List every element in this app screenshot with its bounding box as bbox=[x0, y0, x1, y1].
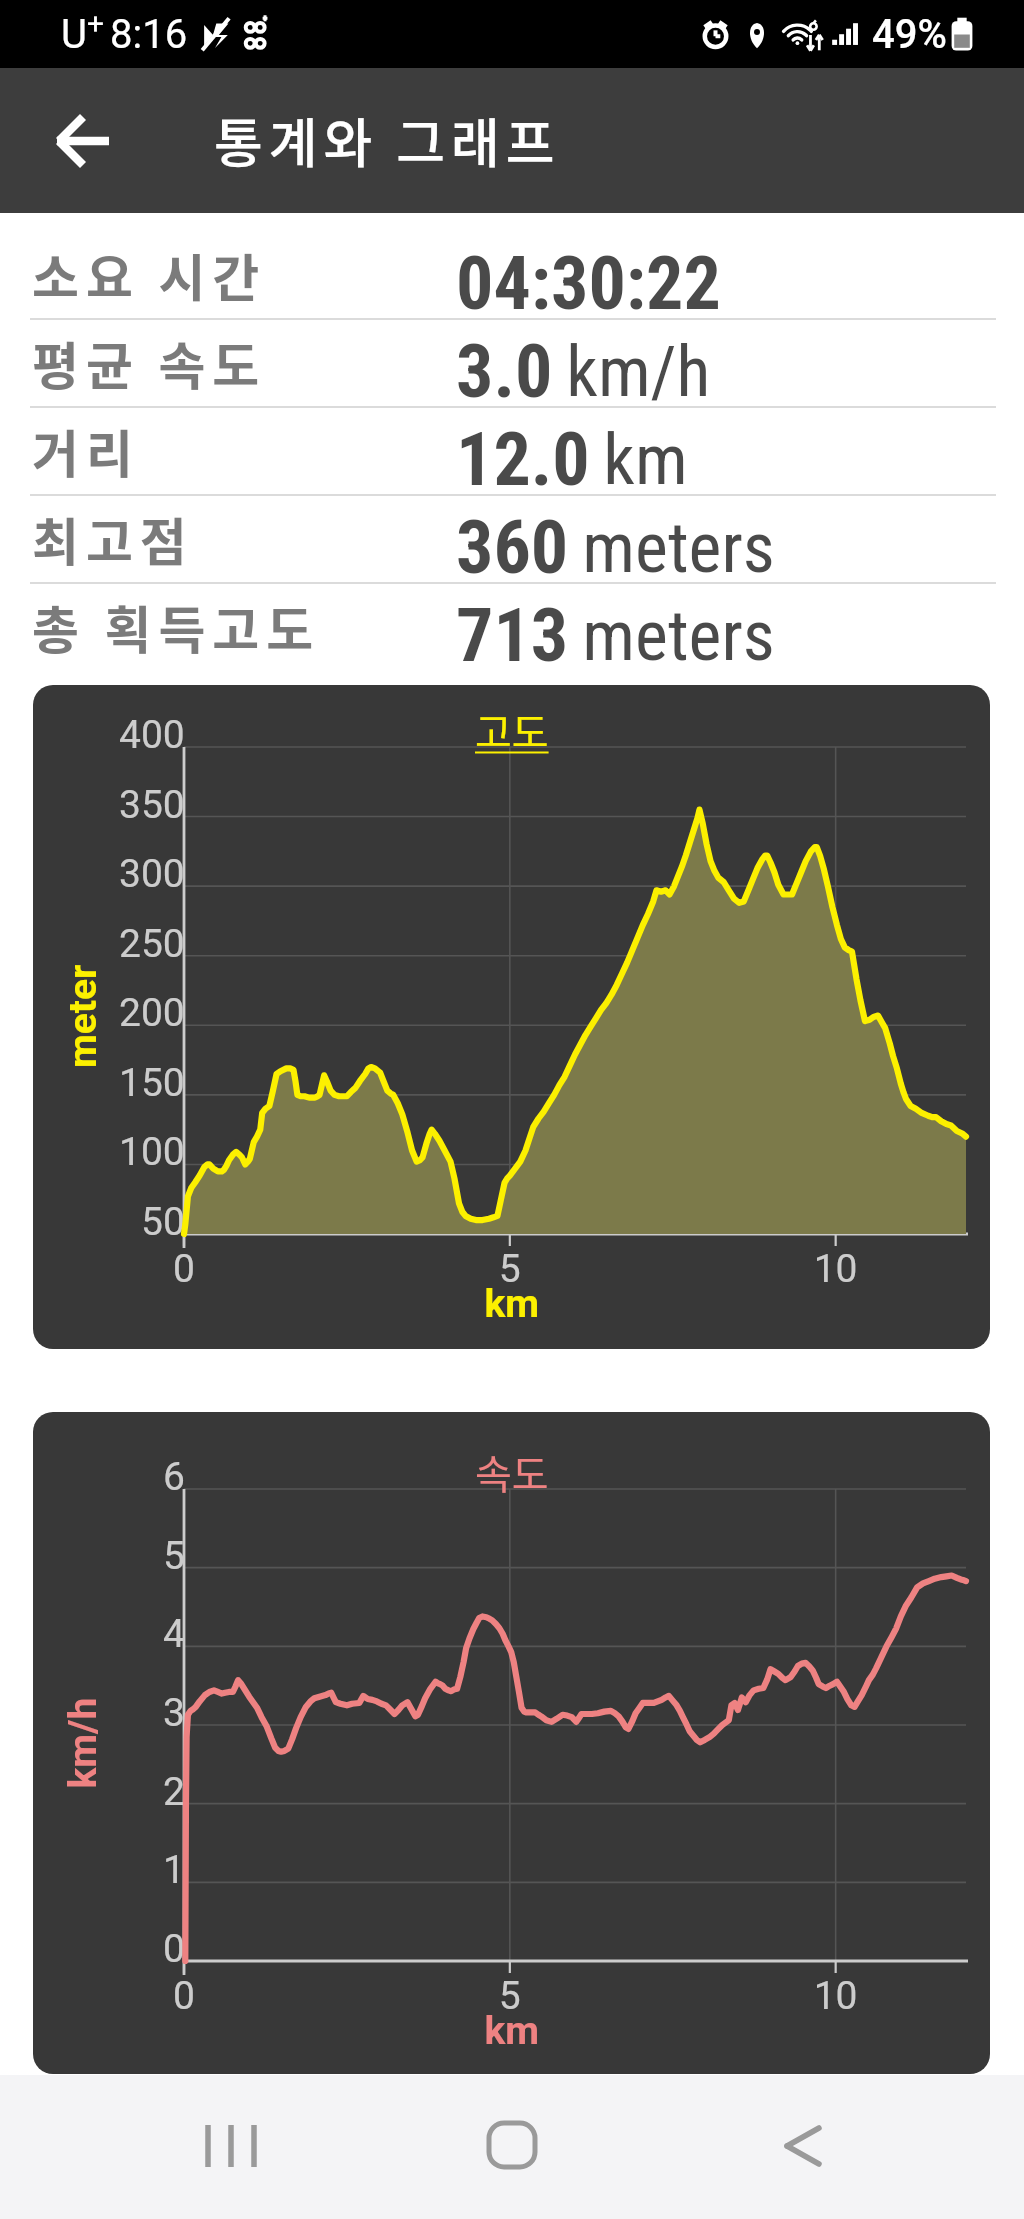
button[interactable]: 거리 bbox=[0, 408, 1024, 496]
button[interactable]: Recent apps bbox=[166, 2087, 286, 2207]
staticText: 3.0 bbox=[456, 328, 553, 414]
button[interactable]: 최고점 bbox=[0, 496, 1024, 584]
staticText: 360 bbox=[456, 504, 569, 590]
staticText: 최고점 bbox=[32, 502, 194, 576]
staticText: + bbox=[87, 6, 105, 41]
button[interactable]: Home bbox=[452, 2087, 572, 2207]
staticText: 49% bbox=[872, 11, 947, 58]
staticText: 평균 속도 bbox=[32, 326, 267, 400]
staticText: 12.0 bbox=[456, 416, 590, 502]
button[interactable]: 평균 속도 bbox=[0, 320, 1024, 408]
staticText: km bbox=[590, 419, 688, 501]
staticText: 8:16 bbox=[110, 11, 188, 58]
staticText: 통계와 그래프 bbox=[214, 102, 561, 179]
staticText: 04:30:22 bbox=[456, 240, 721, 326]
staticText: meters bbox=[569, 507, 775, 589]
button[interactable]: Back bbox=[738, 2087, 858, 2207]
staticText: 소요 시간 bbox=[32, 238, 267, 312]
staticText: 총 획득고도 bbox=[32, 590, 321, 664]
staticText: km/h bbox=[553, 331, 711, 413]
button[interactable]: Back bbox=[34, 92, 132, 190]
button[interactable]: 총 획득고도 bbox=[0, 584, 1024, 670]
button[interactable]: 소요 시간 bbox=[0, 232, 1024, 320]
staticText: U bbox=[61, 11, 87, 58]
staticText: meters bbox=[569, 595, 775, 677]
staticText: 713 bbox=[456, 592, 569, 678]
staticText: 거리 bbox=[32, 414, 140, 488]
